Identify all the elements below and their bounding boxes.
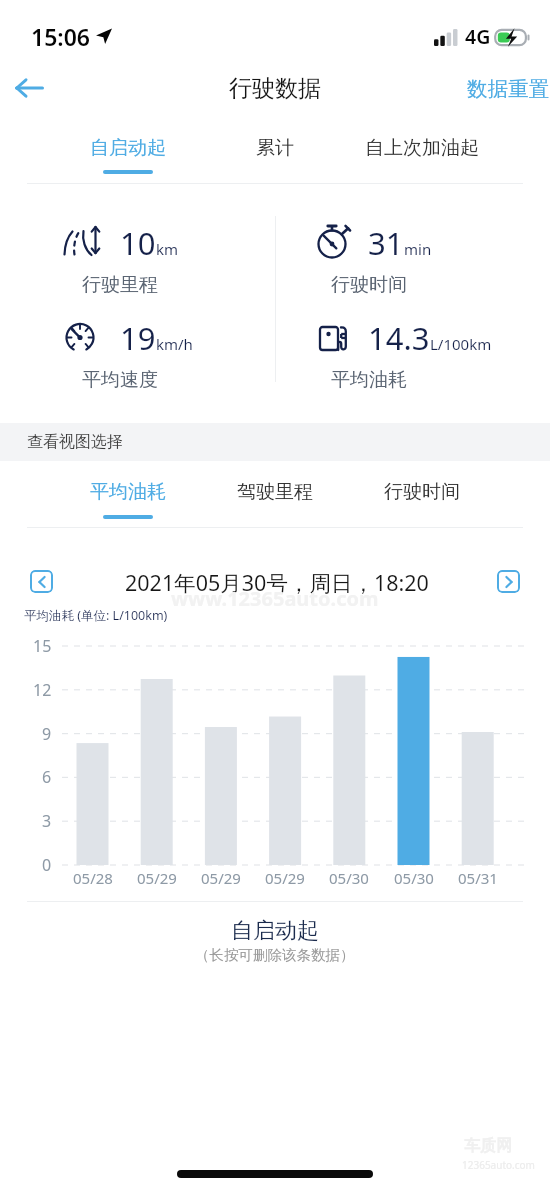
staticText: 6 <box>42 766 52 788</box>
staticText: 15:06 <box>31 21 90 52</box>
staticText: 自上次加油起 <box>365 136 479 160</box>
staticText: 驾驶里程 <box>237 480 313 504</box>
button[interactable]: 行驶时间 <box>357 470 487 520</box>
staticText: 05/31 <box>458 868 498 888</box>
button[interactable]: Previous <box>30 570 53 593</box>
button[interactable]: 数据重置 <box>461 64 550 114</box>
staticText: 10 <box>120 222 156 264</box>
staticText: 累计 <box>256 136 294 160</box>
staticText: 平均油耗 <box>90 480 166 504</box>
button[interactable]: 驾驶里程 <box>210 470 340 520</box>
staticText: 05/29 <box>201 868 241 888</box>
staticText: 0 <box>42 854 52 876</box>
staticText: 05/30 <box>329 868 369 888</box>
staticText: 31 <box>368 222 404 264</box>
staticText: 平均速度 <box>82 368 158 392</box>
staticText: 2021年05月30号，周日，18:20 <box>125 568 429 597</box>
button[interactable]: Back <box>4 64 54 112</box>
staticText: 自启动起 <box>231 917 319 945</box>
staticText: 平均油耗 <box>331 368 407 392</box>
staticText: 12 <box>33 679 52 701</box>
staticText: 3 <box>42 810 52 832</box>
staticText: 19 <box>120 317 156 359</box>
staticText: 查看视图选择 <box>27 432 123 452</box>
staticText: km/h <box>156 334 193 354</box>
staticText: 数据重置 <box>467 76 549 102</box>
button[interactable]: Next <box>497 570 520 593</box>
staticText: 行驶里程 <box>82 273 158 297</box>
staticText: 12365auto.com <box>462 1158 535 1172</box>
staticText: 自启动起 <box>90 136 166 160</box>
staticText: 9 <box>42 723 52 745</box>
staticText: 05/30 <box>394 868 434 888</box>
staticText: km <box>156 239 179 259</box>
staticText: 行驶数据 <box>229 74 321 103</box>
staticText: 14.3 <box>368 317 430 359</box>
staticText: 05/29 <box>265 868 305 888</box>
button[interactable]: 累计 <box>210 124 340 178</box>
staticText: min <box>404 239 432 259</box>
staticText: 行驶时间 <box>384 480 460 504</box>
staticText: 05/29 <box>137 868 177 888</box>
staticText: www.12365auto.com <box>171 585 379 612</box>
staticText: （长按可删除该条数据） <box>195 946 355 964</box>
staticText: L/100km <box>430 334 492 354</box>
button[interactable]: 自上次加油起 <box>357 124 487 178</box>
staticText: 05/28 <box>73 868 113 888</box>
staticText: 15 <box>33 635 52 657</box>
staticText: 平均油耗 (单位: L/100km) <box>24 607 168 624</box>
button[interactable]: 自启动起 <box>63 124 193 178</box>
staticText: 行驶时间 <box>331 273 407 297</box>
button[interactable]: 平均油耗 <box>63 470 193 520</box>
staticText: 车质网 <box>464 1136 512 1156</box>
staticText: 4G <box>465 23 491 50</box>
